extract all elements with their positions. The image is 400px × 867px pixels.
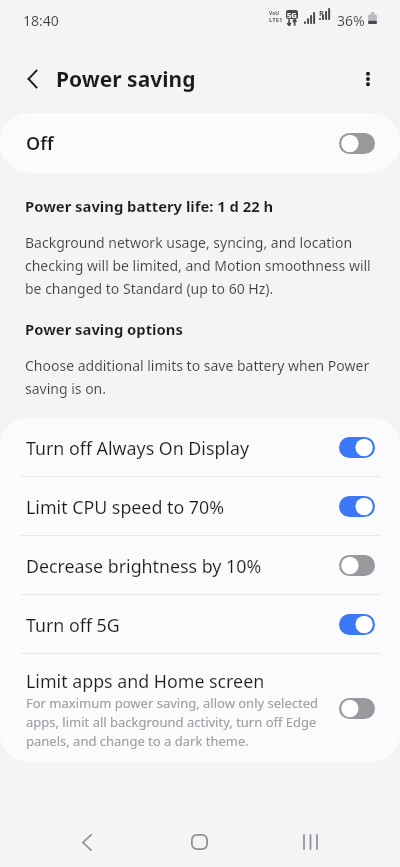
- staticText: R: [319, 8, 324, 18]
- button[interactable]: Turn off 5G: [0, 595, 400, 653]
- button[interactable]: Turn off Always On Display: [0, 418, 400, 476]
- staticText: 36%: [337, 11, 365, 30]
- button[interactable]: Recent apps: [278, 818, 342, 866]
- button[interactable]: Navigate up: [11, 57, 55, 101]
- staticText: Choose additional limits to save battery…: [25, 353, 375, 399]
- button[interactable]: Decrease brightness by 10%: [0, 536, 400, 594]
- staticText: VoU: [269, 11, 280, 16]
- button[interactable]: Home: [167, 818, 231, 866]
- staticText: Power saving battery life: 1 d 22 h: [25, 195, 274, 217]
- button[interactable]: Back: [55, 818, 119, 866]
- staticText: Turn off Always On Display: [26, 438, 339, 460]
- staticText: Turn off 5G: [26, 615, 339, 637]
- staticText: For maximum power saving, allow only sel…: [26, 693, 325, 750]
- staticText: 5G: [287, 10, 297, 19]
- staticText: 18:40: [23, 11, 59, 30]
- staticText: Decrease brightness by 10%: [26, 556, 339, 578]
- button[interactable]: More options: [346, 57, 390, 101]
- staticText: Limit apps and Home screen: [26, 671, 265, 693]
- staticText: LTE1: [269, 17, 283, 24]
- staticText: Power saving: [56, 65, 196, 94]
- button[interactable]: Limit CPU speed to 70%: [0, 477, 400, 535]
- staticText: Background network usage, syncing, and l…: [25, 230, 375, 299]
- button[interactable]: Off: [0, 113, 400, 173]
- staticText: Power saving options: [25, 318, 183, 340]
- staticText: Off: [26, 131, 54, 156]
- staticText: Limit CPU speed to 70%: [26, 497, 339, 519]
- button[interactable]: Limit apps and Home screen: [0, 654, 400, 762]
